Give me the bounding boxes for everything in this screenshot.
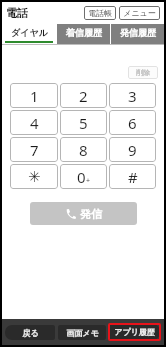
button[interactable]: 戻る [5,325,55,340]
button[interactable]: メニュー [119,6,160,20]
button[interactable]: 3 [109,83,156,108]
staticText: メニュー [123,8,156,18]
staticText: 0 [77,167,86,187]
staticText: 画面メモ [66,328,99,338]
button[interactable]: アプリ履歴 [109,324,160,340]
button[interactable]: 1 [10,83,58,108]
button[interactable]: 6 [109,110,156,135]
staticText: 発信履歴 [120,27,156,38]
staticText: 戻る [22,328,39,338]
button[interactable]: 5 [60,110,107,135]
staticText: 6 [128,113,137,133]
button[interactable]: 2 [60,83,107,108]
staticText: 電話帳 [88,8,112,18]
button[interactable]: # [109,164,156,189]
button[interactable]: 9 [109,137,156,162]
staticText: 3 [128,86,137,106]
staticText: ✳ [28,168,41,185]
button[interactable]: 発信履歴 [111,24,164,44]
staticText: 削除 [136,68,150,77]
staticText: 8 [79,140,88,160]
button[interactable]: 7 [10,137,58,162]
button[interactable]: 電話帳 [84,6,116,20]
button[interactable]: 8 [60,137,107,162]
staticText: アプリ履歴 [114,327,155,337]
button[interactable]: 画面メモ [58,325,106,340]
staticText: # [128,167,138,187]
staticText: ダイヤル [11,27,48,38]
staticText: 1 [30,86,39,106]
button[interactable]: 0 [60,164,107,189]
staticText: 5 [79,113,88,133]
staticText: 発信 [80,207,102,221]
button[interactable]: ✳ [10,164,58,189]
button[interactable]: 発信 [30,202,137,225]
button[interactable]: ダイヤル [2,24,56,44]
staticText: 2 [79,86,88,106]
button[interactable]: 着信履歴 [57,24,110,44]
staticText: 着信履歴 [66,27,102,38]
staticText: + [86,176,91,186]
staticText: 9 [128,140,137,160]
staticText: 電話 [6,6,28,20]
button[interactable]: 4 [10,110,58,135]
staticText: 7 [30,140,39,160]
button[interactable]: 削除 [128,66,158,79]
staticText: 4 [30,113,39,133]
